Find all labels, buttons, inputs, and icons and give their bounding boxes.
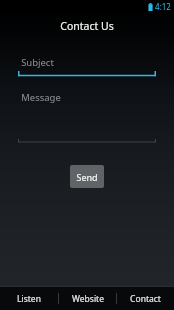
staticText: 4:12 (155, 1, 171, 12)
button[interactable]: Send (70, 165, 104, 188)
button[interactable]: Listen (0, 287, 58, 310)
staticText: Contact Us (60, 19, 114, 33)
staticText: Contact (130, 293, 161, 305)
staticText: Subject (21, 56, 54, 69)
staticText: Listen (17, 293, 41, 305)
other: Battery (148, 3, 153, 11)
staticText: Message (21, 91, 61, 104)
button[interactable]: Website (59, 287, 116, 310)
staticText: Send (76, 171, 98, 183)
staticText: Website (72, 293, 104, 305)
button[interactable]: Contact (117, 287, 174, 310)
button[interactable]: Subject (18, 56, 156, 75)
button[interactable]: Message (18, 91, 156, 143)
